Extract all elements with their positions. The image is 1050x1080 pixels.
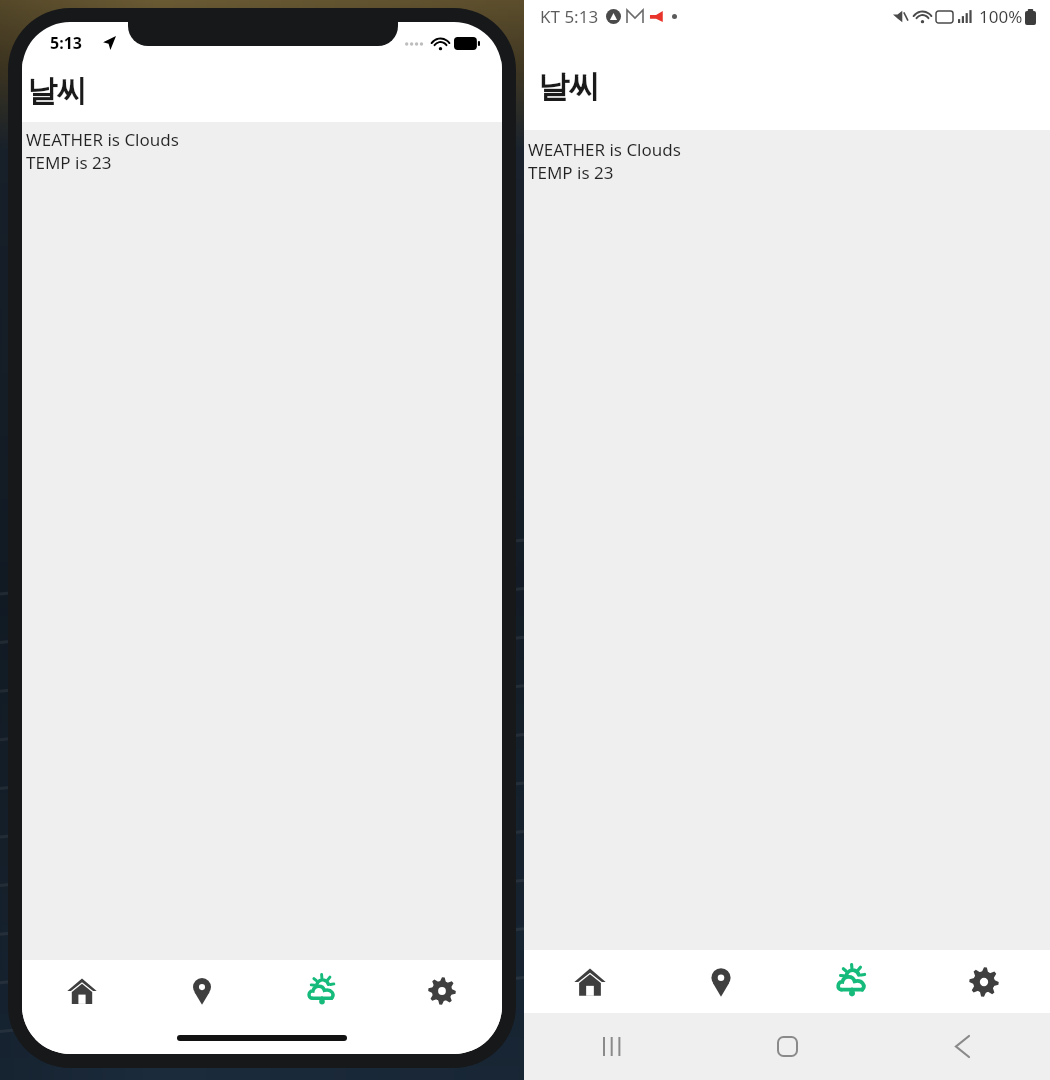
staticText: 100% xyxy=(979,5,1023,28)
button[interactable]: Weather xyxy=(262,960,382,1022)
staticText: 5:13 xyxy=(50,32,82,54)
button[interactable]: Location xyxy=(655,950,786,1013)
staticText: 날씨 xyxy=(538,67,600,106)
button[interactable]: Settings xyxy=(918,950,1050,1013)
staticText: TEMP is 23 xyxy=(26,151,112,174)
staticText: WEATHER is Clouds xyxy=(528,138,681,161)
staticText: 날씨 xyxy=(27,72,87,110)
button[interactable]: Back xyxy=(875,1013,1050,1080)
button[interactable]: Recent apps xyxy=(524,1013,700,1080)
button[interactable]: Home xyxy=(22,960,142,1022)
staticText: KT 5:13 xyxy=(540,5,599,28)
staticText: WEATHER is Clouds xyxy=(26,128,179,151)
button[interactable]: Weather xyxy=(786,950,918,1013)
button[interactable]: Home xyxy=(524,950,655,1013)
staticText: TEMP is 23 xyxy=(528,161,614,184)
button[interactable]: Location xyxy=(142,960,262,1022)
button[interactable]: Settings xyxy=(382,960,502,1022)
button[interactable]: Home xyxy=(700,1013,875,1080)
